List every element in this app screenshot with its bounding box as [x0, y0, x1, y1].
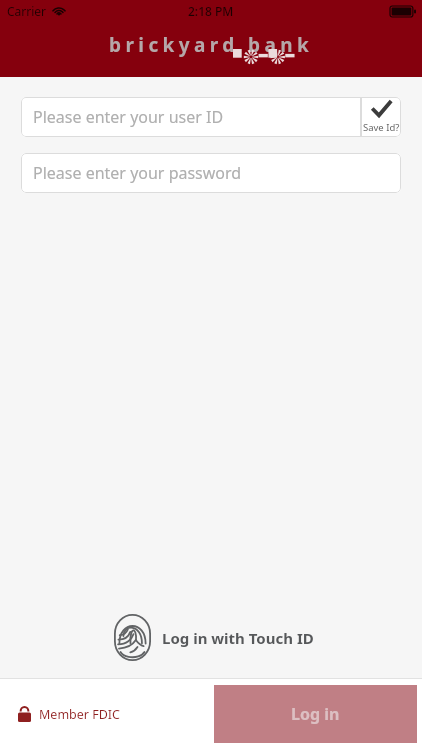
other: FDIC lock: [18, 706, 31, 722]
staticText: Log in: [291, 703, 340, 725]
button[interactable]: Log in with Touch ID: [114, 614, 314, 661]
other: Fingerprint: [114, 614, 151, 661]
staticText: Please enter your password: [33, 162, 242, 184]
button[interactable]: Log in: [214, 685, 417, 743]
staticText: Carrier: [7, 3, 47, 19]
button[interactable]: Please enter your user ID: [21, 97, 361, 137]
staticText: Member FDIC: [39, 706, 120, 723]
staticText: Save Id?: [363, 121, 400, 134]
staticText: 2:18 PM: [188, 3, 234, 19]
staticText: brickyard bank: [109, 32, 314, 58]
staticText: Please enter your user ID: [33, 106, 224, 128]
staticText: Log in with Touch ID: [162, 628, 314, 648]
button[interactable]: Please enter your password: [21, 153, 401, 193]
button[interactable]: Save Id?: [361, 97, 401, 137]
